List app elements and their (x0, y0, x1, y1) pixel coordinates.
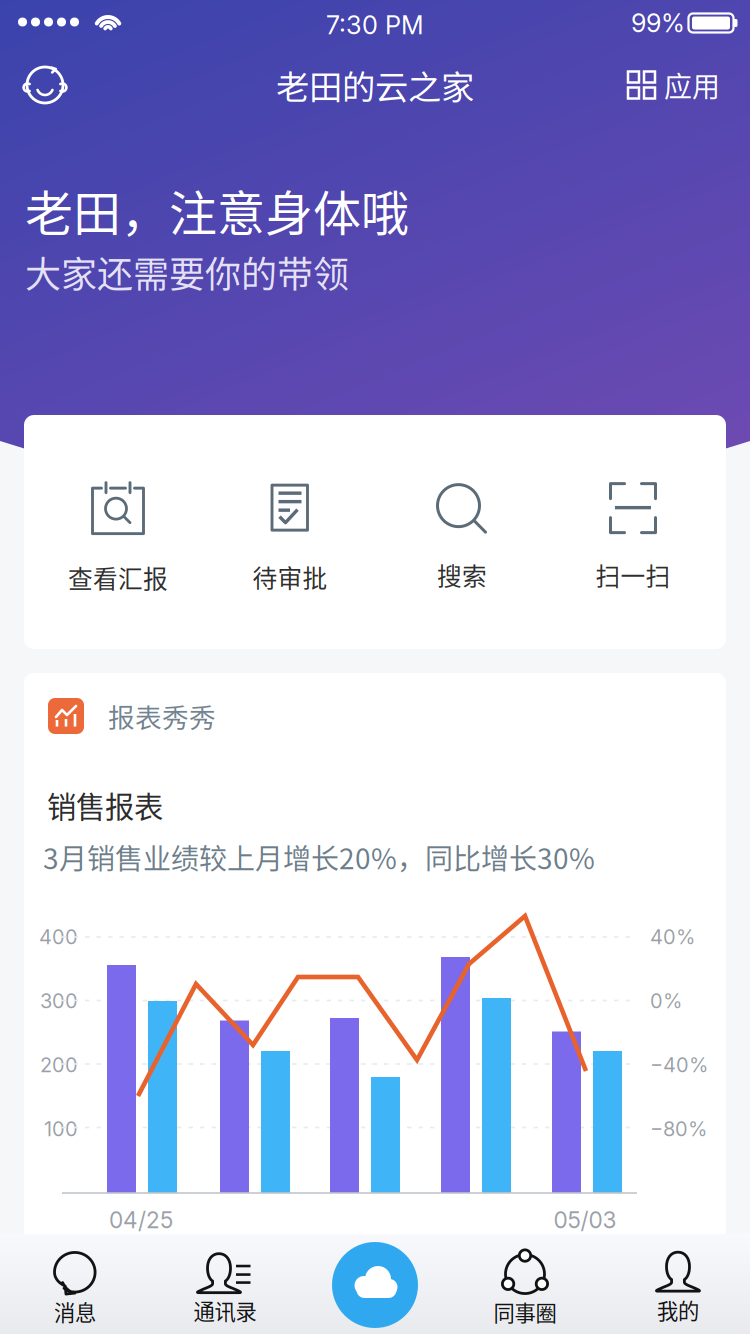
button[interactable]: 应用 (618, 54, 730, 116)
button[interactable]: 搜索 (382, 477, 542, 598)
button[interactable]: 扫一扫 (553, 477, 713, 598)
staticText: −80% (650, 1117, 707, 1141)
staticText: 通讯录 (193, 1295, 256, 1326)
staticText: 销售报表 (47, 784, 163, 826)
staticText: 300 (40, 989, 78, 1013)
staticText: 3月销售业绩较上月增长20%，同比增长30% (43, 837, 595, 877)
staticText: 应用 (664, 65, 720, 105)
staticText: 100 (44, 1117, 78, 1141)
button[interactable]: 待审批 (210, 477, 370, 598)
button[interactable]: 通讯录 (150, 1233, 300, 1329)
staticText: 报表秀秀 (108, 697, 216, 735)
staticText: 7:30 PM (326, 10, 424, 40)
button[interactable]: 云之家 (315, 1237, 435, 1333)
staticText: 搜索 (437, 557, 487, 593)
button[interactable]: 我的 (603, 1233, 750, 1329)
staticText: 200 (40, 1053, 78, 1077)
button[interactable]: Profile (8, 52, 82, 118)
staticText: 老田，注意身体哦 (25, 175, 409, 245)
staticText: 05/03 (553, 1206, 616, 1234)
staticText: 扫一扫 (595, 557, 670, 593)
staticText: 04/25 (109, 1206, 173, 1234)
staticText: 400 (39, 925, 78, 949)
staticText: 99% (631, 8, 685, 38)
staticText: 查看汇报 (68, 560, 168, 595)
staticText: 待审批 (252, 559, 327, 595)
button[interactable]: 查看汇报 (38, 477, 198, 598)
staticText: 同事圈 (493, 1297, 556, 1327)
staticText: 大家还需要你的带领 (25, 246, 349, 298)
staticText: 我的 (657, 1295, 699, 1325)
staticText: −40% (650, 1053, 708, 1077)
button[interactable]: 消息 (0, 1233, 150, 1329)
staticText: 消息 (54, 1296, 96, 1327)
staticText: 0% (650, 989, 682, 1013)
button[interactable]: 同事圈 (450, 1233, 600, 1329)
staticText: 40% (650, 925, 695, 949)
staticText: 老田的云之家 (276, 61, 474, 109)
